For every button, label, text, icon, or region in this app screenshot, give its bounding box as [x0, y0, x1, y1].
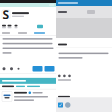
staticText: S — [2, 6, 9, 22]
staticText: ✓ — [58, 102, 62, 108]
